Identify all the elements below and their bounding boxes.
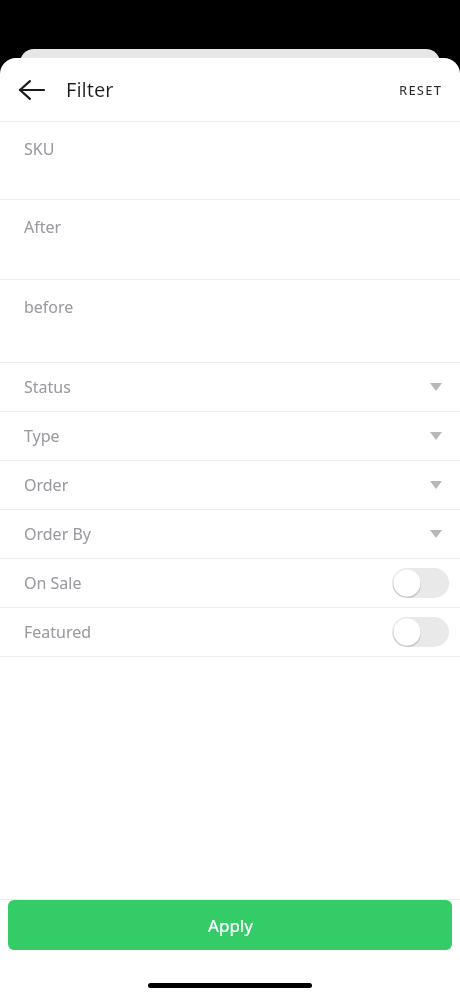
button[interactable]: RESET: [382, 69, 460, 111]
button[interactable]: Apply: [8, 900, 452, 950]
button[interactable]: On Sale: [0, 558, 460, 607]
button[interactable]: Order: [0, 460, 460, 509]
button[interactable]: SKU: [0, 121, 460, 199]
staticText: before: [24, 296, 74, 318]
staticText: SKU: [24, 138, 55, 160]
button[interactable]: Status: [0, 362, 460, 411]
staticText: Filter: [66, 76, 114, 103]
button[interactable]: After: [0, 199, 460, 279]
staticText: Apply: [208, 914, 253, 937]
button[interactable]: Featured: [0, 607, 460, 656]
button[interactable]: Back: [8, 66, 56, 114]
staticText: Type: [24, 425, 60, 447]
staticText: On Sale: [24, 572, 82, 594]
staticText: Order By: [24, 523, 91, 545]
button[interactable]: Type: [0, 411, 460, 460]
button[interactable]: Order By: [0, 509, 460, 558]
staticText: After: [24, 216, 62, 238]
staticText: Order: [24, 474, 69, 496]
button[interactable]: before: [0, 279, 460, 362]
staticText: Featured: [24, 621, 92, 643]
staticText: RESET: [399, 81, 443, 99]
staticText: Status: [24, 376, 71, 398]
